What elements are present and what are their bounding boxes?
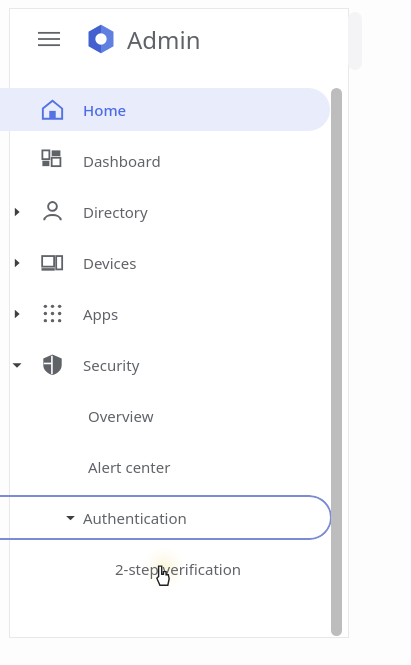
button[interactable]: Directory [0,186,411,237]
button[interactable]: Overview [0,390,411,441]
button[interactable]: Home [0,84,411,135]
button[interactable]: Apps [0,288,411,339]
button[interactable]: Main menu [32,22,66,56]
button[interactable]: 2-step verification [0,543,411,594]
button[interactable]: Security [0,339,411,390]
button[interactable]: Dashboard [0,135,411,186]
staticText: Directory [83,202,148,222]
staticText: Apps [83,304,119,324]
button[interactable]: Alert center [0,441,411,492]
button[interactable]: Devices [0,237,411,288]
staticText: Admin [127,23,201,56]
staticText: Home [83,100,127,120]
staticText: Overview [88,406,154,426]
button[interactable]: Admin [84,22,201,56]
staticText: 2-step verification [115,559,242,579]
staticText: Alert center [88,457,171,477]
staticText: Dashboard [83,151,161,171]
button[interactable]: Authentication [0,492,411,543]
staticText: Authentication [83,508,187,528]
staticText: Security [83,355,140,375]
staticText: Devices [83,253,137,273]
